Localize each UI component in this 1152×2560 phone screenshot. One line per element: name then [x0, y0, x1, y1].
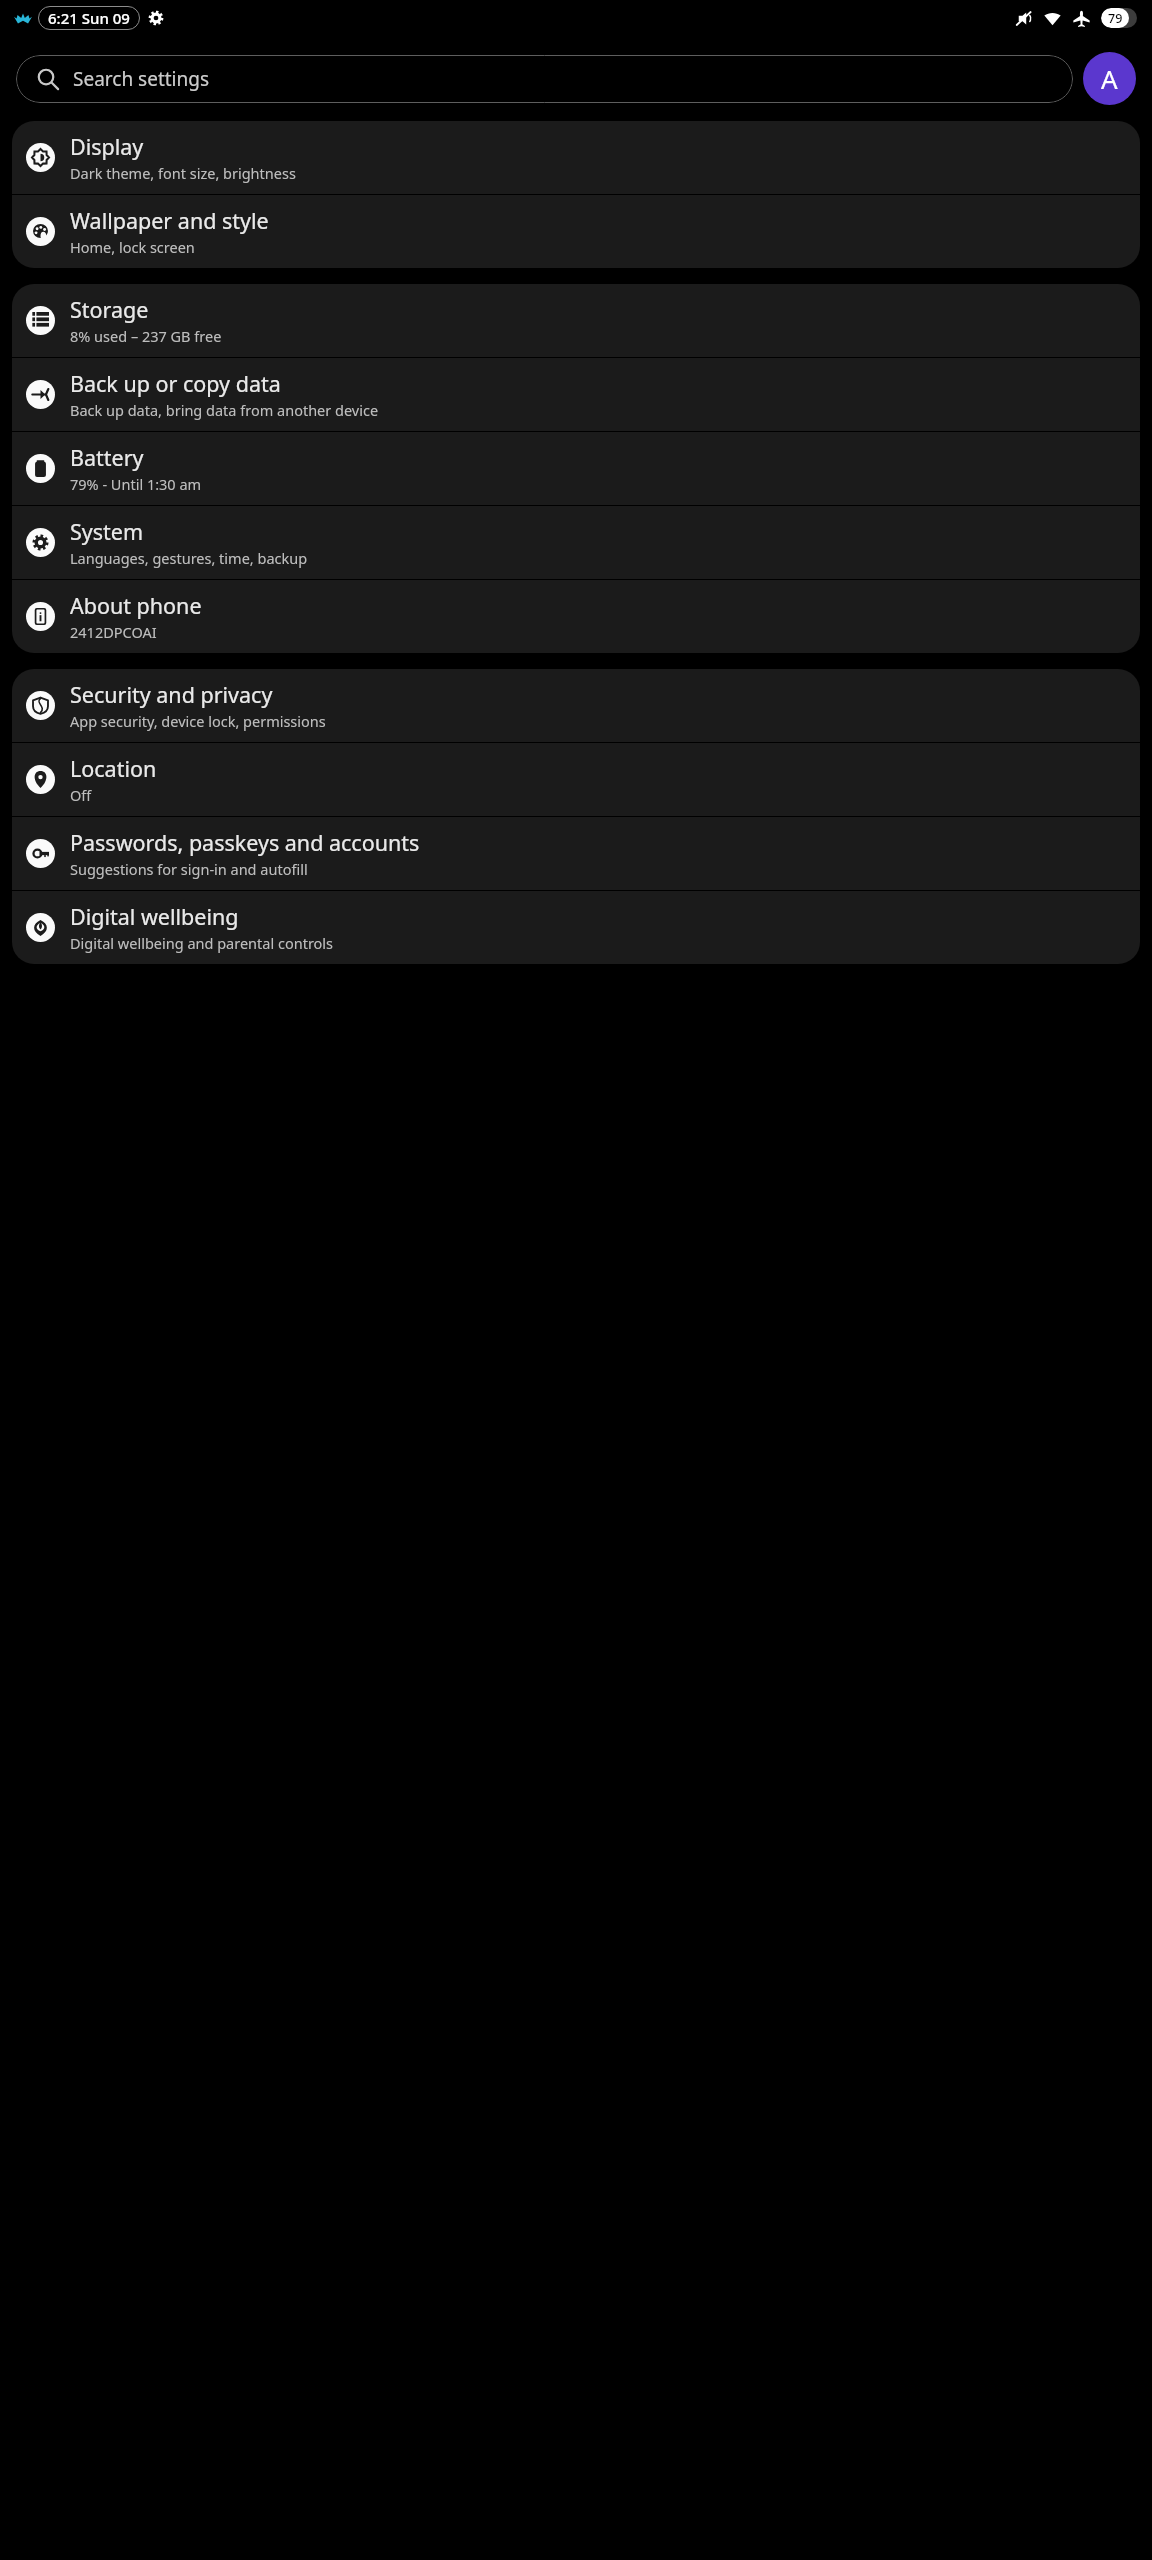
button[interactable]: Search settings: [16, 55, 1073, 103]
staticText: 2412DPCOAI: [70, 622, 157, 642]
staticText: App security, device lock, permissions: [70, 711, 326, 731]
staticText: A: [1101, 61, 1118, 96]
button[interactable]: Location: [12, 743, 1140, 816]
button[interactable]: Passwords, passkeys and accounts: [12, 817, 1140, 890]
button[interactable]: Back up or copy data: [12, 358, 1140, 431]
staticText: About phone: [70, 591, 202, 620]
button[interactable]: Battery: [12, 432, 1140, 505]
staticText: Battery: [70, 443, 144, 472]
button[interactable]: Security and privacy: [12, 669, 1140, 742]
staticText: System: [70, 517, 144, 546]
staticText: Languages, gestures, time, backup: [70, 548, 308, 568]
staticText: 6:21 Sun 09: [48, 8, 130, 28]
staticText: Digital wellbeing and parental controls: [70, 933, 334, 953]
staticText: Home, lock screen: [70, 237, 195, 257]
button[interactable]: Account: [1083, 52, 1136, 105]
staticText: Search settings: [73, 66, 210, 92]
button[interactable]: Wallpaper and style: [12, 195, 1140, 268]
staticText: Storage: [70, 295, 149, 324]
staticText: 79% - Until 1:30 am: [70, 474, 202, 494]
staticText: Back up or copy data: [70, 369, 281, 398]
staticText: Off: [70, 785, 92, 805]
staticText: Suggestions for sign-in and autofill: [70, 859, 308, 879]
staticText: Back up data, bring data from another de…: [70, 400, 379, 420]
staticText: Digital wellbeing: [70, 902, 239, 931]
staticText: 8% used – 237 GB free: [70, 326, 222, 346]
button[interactable]: Display: [12, 121, 1140, 194]
staticText: Location: [70, 754, 157, 783]
staticText: 79: [1108, 10, 1123, 27]
staticText: Wallpaper and style: [70, 206, 269, 235]
staticText: Security and privacy: [70, 680, 273, 709]
button[interactable]: Storage: [12, 284, 1140, 357]
button[interactable]: About phone: [12, 580, 1140, 653]
other: Settings: [148, 10, 164, 26]
button[interactable]: System: [12, 506, 1140, 579]
staticText: Display: [70, 132, 144, 161]
staticText: Dark theme, font size, brightness: [70, 163, 296, 183]
staticText: Passwords, passkeys and accounts: [70, 828, 420, 857]
button[interactable]: Digital wellbeing: [12, 891, 1140, 964]
